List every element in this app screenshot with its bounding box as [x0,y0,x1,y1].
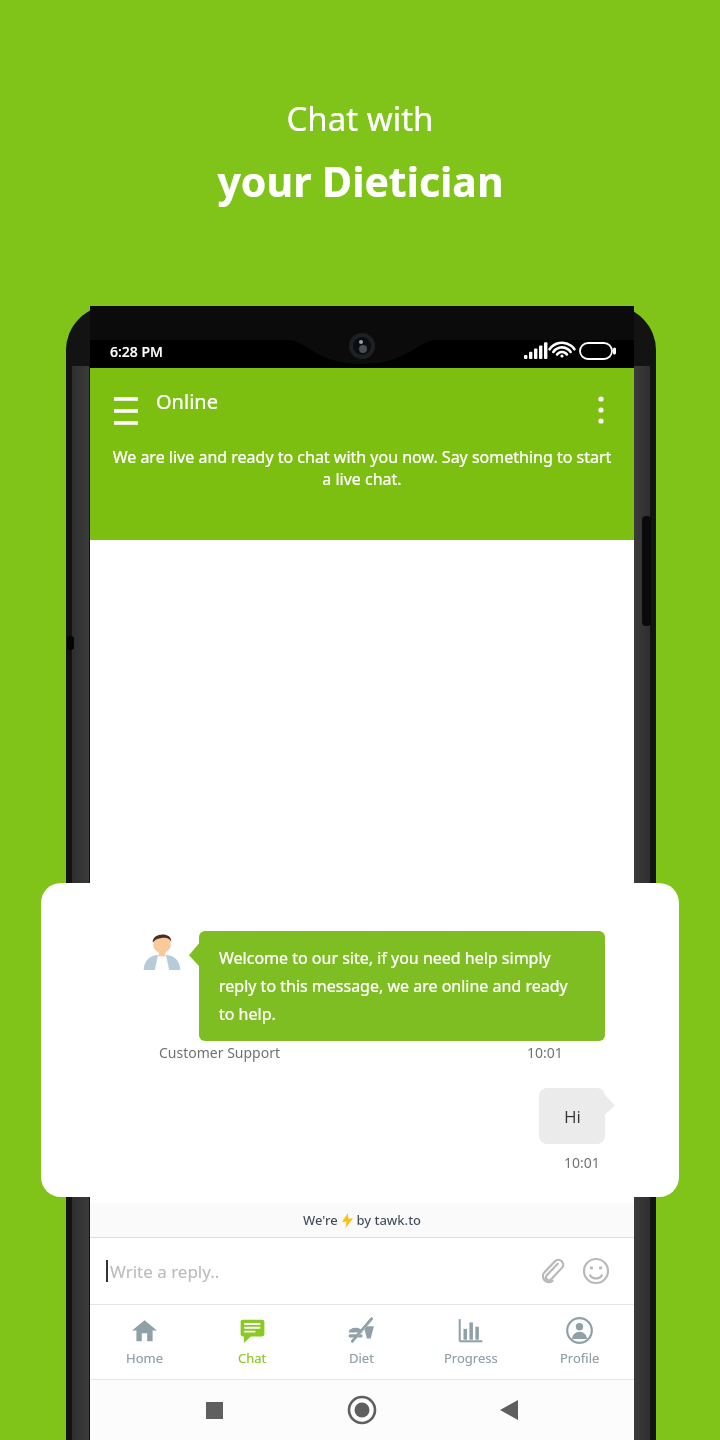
staticText: by tawk.to [353,1211,422,1229]
button[interactable]: Hi [539,1088,605,1144]
staticText: Write a reply.. [110,1260,220,1283]
button[interactable]: Open navigation menu [104,379,148,423]
staticText: Home [126,1349,163,1367]
button[interactable]: Attach file [530,1249,574,1293]
staticText: Welcome to our site, if you need help si… [219,947,585,1025]
staticText: Profile [560,1349,600,1367]
staticText: Customer Support [159,1043,281,1062]
button[interactable]: More options [580,380,622,422]
button[interactable]: Home [90,1311,198,1373]
staticText: Progress [444,1349,498,1367]
button[interactable]: Insert emoji [574,1249,618,1293]
staticText: Online [156,388,218,415]
staticText: We are live and ready to chat with you n… [108,446,616,490]
button[interactable]: Recents [190,1386,238,1434]
staticText: 10:01 [527,1043,563,1062]
button[interactable]: Profile [525,1311,634,1373]
staticText: Chat with [286,96,434,141]
button[interactable]: Back [486,1386,534,1434]
staticText: your Dietician [217,153,504,209]
staticText: Hi [564,1105,581,1128]
staticText: 6:28 PM [110,342,163,361]
button[interactable]: Diet [307,1311,416,1373]
staticText: Diet [349,1349,374,1367]
button[interactable]: Chat [198,1311,307,1373]
button[interactable]: Home [338,1386,386,1434]
staticText: Chat [238,1349,267,1367]
button[interactable]: Progress [416,1311,525,1373]
button[interactable]: Welcome to our site, if you need help si… [199,931,605,1041]
staticText: 10:01 [564,1153,600,1172]
staticText: We're [303,1211,342,1229]
